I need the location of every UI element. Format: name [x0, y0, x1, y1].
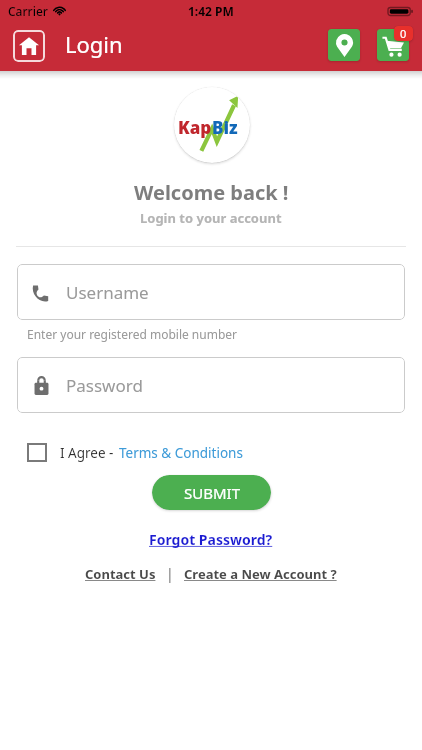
button[interactable]: Create a New Account ? — [184, 565, 337, 583]
staticText: 0 — [400, 26, 407, 41]
staticText: Create a New Account ? — [184, 565, 337, 583]
button[interactable]: Cart — [377, 29, 409, 61]
staticText: Contact Us — [85, 565, 156, 583]
staticText: Kap — [178, 116, 212, 139]
staticText: SUBMIT — [184, 483, 240, 503]
staticText: Welcome back ! — [134, 179, 289, 206]
staticText: | — [166, 564, 174, 583]
button[interactable]: Terms & Conditions — [119, 444, 243, 462]
staticText: Login — [65, 29, 123, 59]
staticText: Username — [66, 281, 149, 304]
button[interactable]: Username — [17, 264, 405, 320]
button[interactable]: Forgot Password? — [149, 530, 273, 549]
button[interactable]: Password — [17, 357, 405, 413]
button[interactable]: Home — [13, 30, 45, 62]
button[interactable]: SUBMIT — [152, 475, 271, 510]
staticText: Carrier — [8, 3, 48, 19]
staticText: Login to your account — [140, 209, 282, 227]
staticText: I Agree - — [60, 444, 114, 462]
button[interactable]: Location — [328, 29, 360, 61]
staticText: Terms & Conditions — [119, 444, 243, 462]
staticText: Enter your registered mobile number — [27, 326, 238, 342]
staticText: Biz — [212, 116, 238, 139]
staticText: Forgot Password? — [149, 530, 273, 549]
staticText: Password — [66, 374, 143, 397]
staticText: 1:42 PM — [188, 3, 234, 19]
button[interactable]: I Agree checkbox — [27, 443, 47, 462]
button[interactable]: Contact Us — [85, 565, 156, 583]
